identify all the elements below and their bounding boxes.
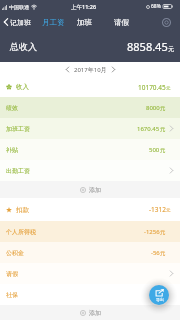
button[interactable]: 添加 [0,181,180,198]
button[interactable]: 社保 [0,284,180,305]
button[interactable]: 绩效 [0,97,180,118]
staticText: 500 [149,146,160,154]
staticText: 扣款 [16,206,29,214]
staticText: 上午11:26 [71,3,97,11]
button[interactable]: 请假 [110,15,133,30]
staticText: -56 [151,249,160,257]
button[interactable]: 请假 [0,263,180,284]
button[interactable]: 补贴 [0,139,180,160]
staticText: 10170.45 [138,83,166,92]
button[interactable]: 2017年10月 [0,62,180,77]
staticText: 2017年10月 [74,66,107,74]
staticText: 8858.45 [127,39,168,54]
button[interactable]: 加班 [73,15,96,30]
button[interactable]: 添加 [0,305,180,320]
staticText: 添加 [89,186,101,194]
staticText: 元 [160,105,166,112]
button[interactable]: Statistics [157,13,175,31]
staticText: 元 [166,86,171,92]
staticText: 记加班 [10,18,31,27]
staticText: 加班工资 [6,125,30,133]
button[interactable]: 记加班 [0,13,34,31]
staticText: -1256 [144,228,160,236]
staticText: 公积金 [6,249,24,257]
button[interactable]: 月工资 [38,15,69,30]
button[interactable]: 收入 [0,77,180,97]
staticText: 元 [166,208,171,214]
staticText: 中国联通 [9,4,29,10]
staticText: 个人所得税 [6,228,36,236]
button[interactable]: 个人所得税 [0,221,180,242]
staticText: 请假 [6,270,18,278]
button[interactable]: 导出 [149,285,169,305]
staticText: 总收入 [10,41,37,52]
staticText: 收入 [16,83,29,91]
staticText: 元 [160,126,166,133]
staticText: -1312 [149,205,166,214]
staticText: 元 [168,45,174,53]
staticText: 元 [160,250,166,257]
staticText: 添加 [89,309,101,317]
button[interactable]: 加班工资 [0,118,180,139]
button[interactable]: 出勤工资 [0,160,180,181]
staticText: 元 [160,229,166,236]
staticText: 导出 [156,297,164,302]
staticText: 元 [160,147,166,154]
button[interactable]: 公积金 [0,242,180,263]
staticText: 社保 [6,291,18,299]
button[interactable]: 扣款 [0,198,180,221]
staticText: 8000 [146,104,160,112]
staticText: 绩效 [6,104,18,112]
staticText: 出勤工资 [6,167,30,175]
staticText: 补贴 [6,146,18,154]
staticText: 68% [151,3,161,10]
staticText: 1670.45 [137,125,160,133]
